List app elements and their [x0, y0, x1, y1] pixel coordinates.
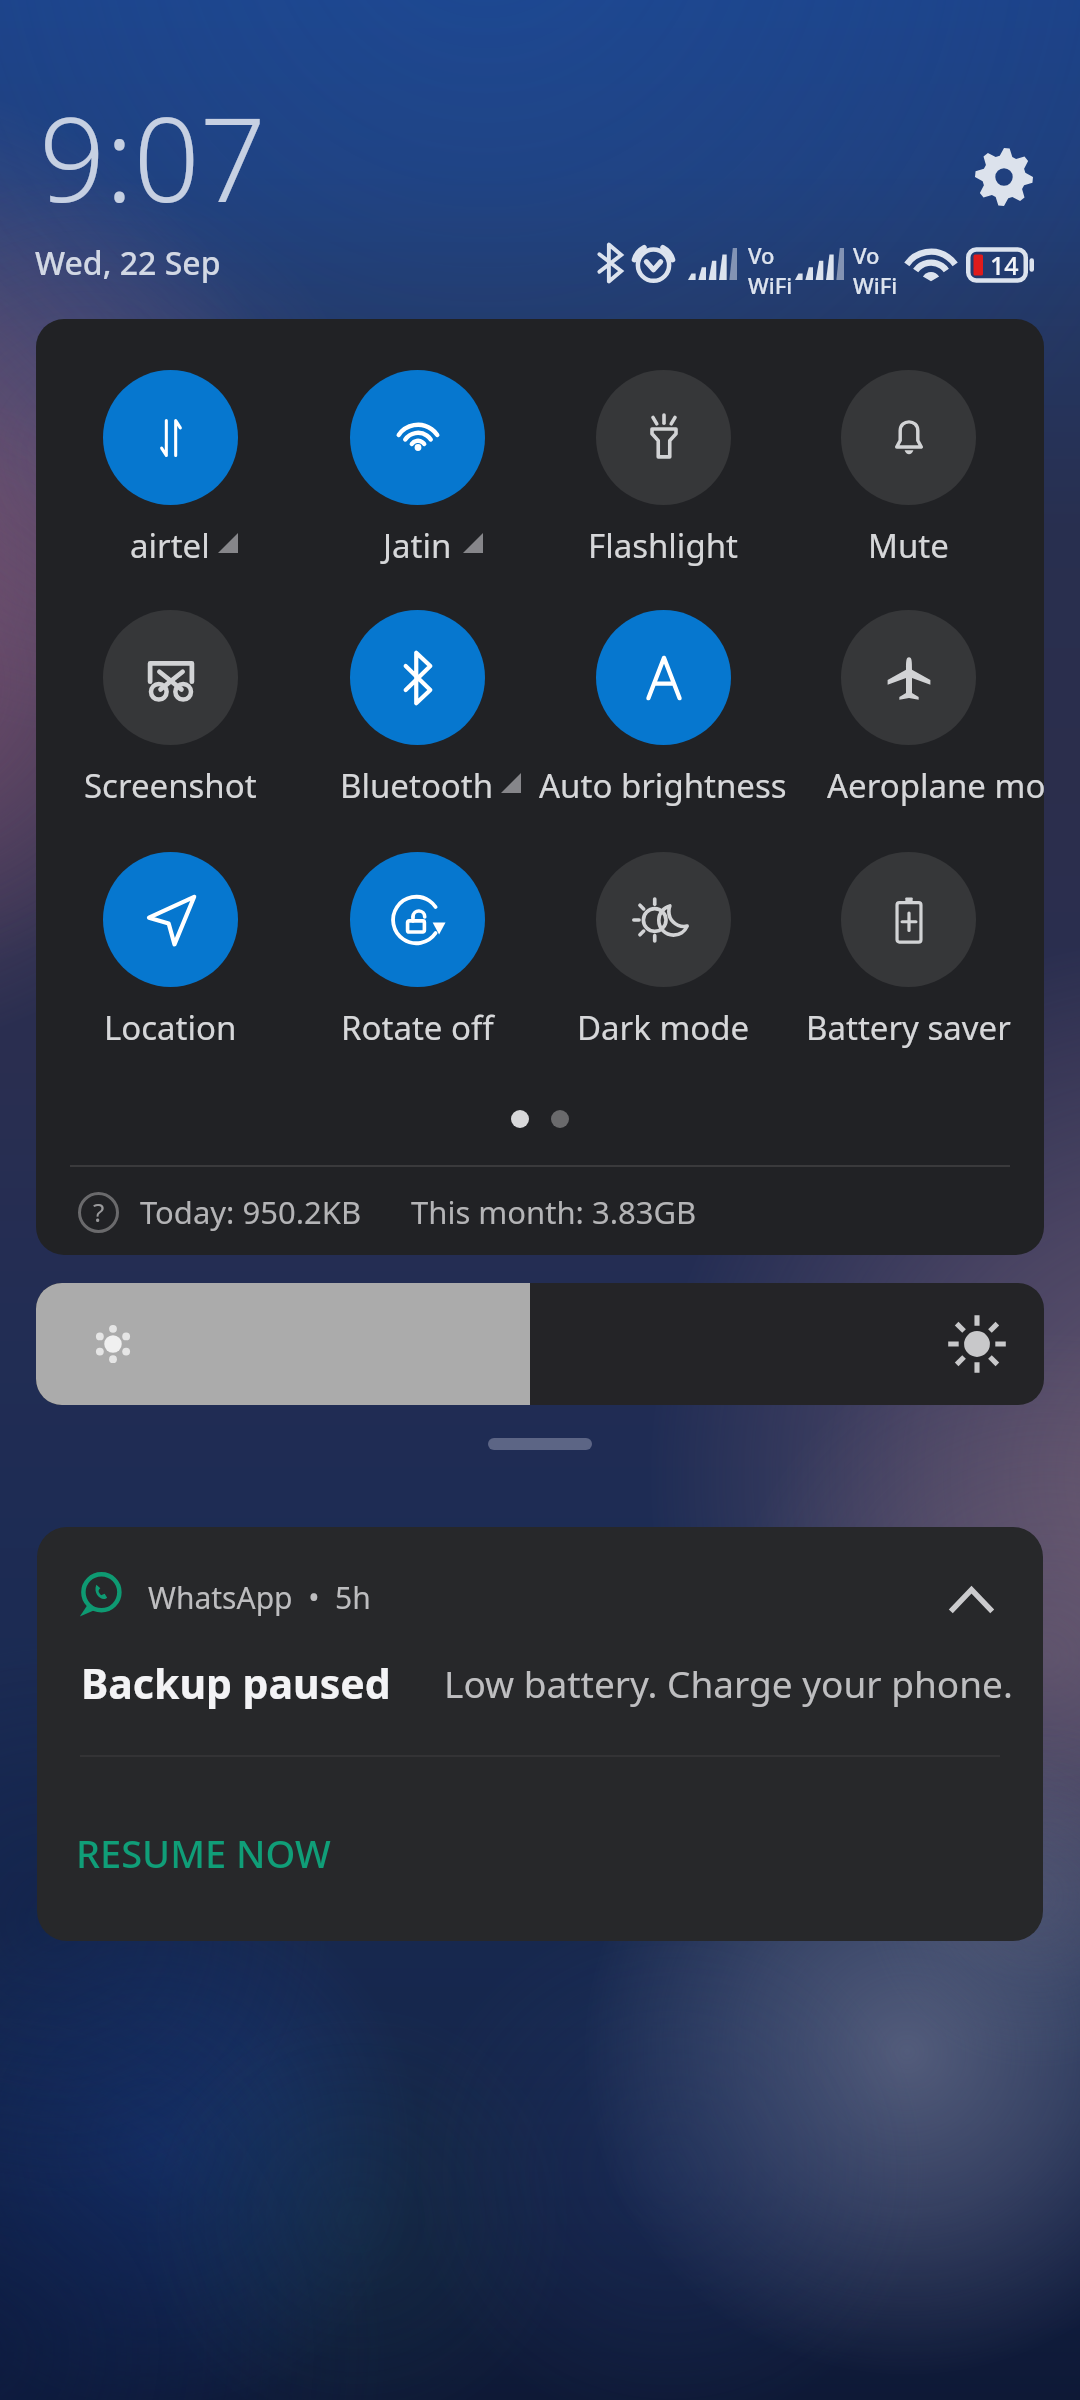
- staticText: 9:07: [39, 78, 267, 236]
- staticText: Low battery. Charge your phone.: [444, 1658, 1013, 1708]
- staticText: Backup paused: [81, 1655, 391, 1711]
- button[interactable]: [70, 370, 270, 582]
- staticText: ?: [93, 1194, 105, 1229]
- button[interactable]: [317, 852, 517, 1064]
- staticText: WiFi: [748, 270, 793, 300]
- staticText: Mute: [868, 523, 949, 568]
- button[interactable]: [808, 610, 1008, 822]
- staticText: 14: [990, 248, 1019, 282]
- staticText: Aeroplane mode: [827, 763, 1044, 808]
- button[interactable]: RESUME NOW: [57, 1807, 387, 1899]
- button[interactable]: [808, 852, 1008, 1064]
- button[interactable]: [317, 610, 517, 822]
- staticText: Auto brightness: [539, 763, 787, 808]
- button[interactable]: [563, 370, 763, 582]
- staticText: Dark mode: [577, 1005, 750, 1050]
- staticText: Bluetooth: [340, 763, 494, 808]
- button[interactable]: Collapse: [934, 1562, 1009, 1637]
- button[interactable]: [563, 852, 763, 1064]
- staticText: WhatsApp • 5h: [148, 1577, 371, 1618]
- staticText: Vo: [748, 240, 775, 270]
- staticText: Wed, 22 Sep: [35, 241, 221, 285]
- button[interactable]: [70, 610, 270, 822]
- staticText: Vo: [853, 240, 880, 270]
- button[interactable]: Settings: [952, 125, 1056, 229]
- staticText: RESUME NOW: [76, 1827, 331, 1879]
- staticText: WiFi: [853, 270, 898, 300]
- staticText: Jatin: [383, 523, 452, 568]
- button[interactable]: Brightness: [36, 1283, 1044, 1405]
- staticText: Battery saver: [806, 1005, 1011, 1050]
- button[interactable]: [70, 852, 270, 1064]
- button[interactable]: WhatsApp • 5h: [37, 1527, 1043, 1941]
- staticText: Today: 950.2KB: [140, 1191, 362, 1233]
- staticText: Rotate off: [341, 1005, 494, 1050]
- staticText: Screenshot: [84, 763, 257, 808]
- button[interactable]: [808, 370, 1008, 582]
- button[interactable]: [563, 610, 763, 822]
- staticText: airtel: [130, 523, 210, 568]
- staticText: Location: [104, 1005, 237, 1050]
- button[interactable]: [317, 370, 517, 582]
- staticText: Flashlight: [588, 523, 738, 568]
- staticText: This month: 3.83GB: [411, 1191, 697, 1233]
